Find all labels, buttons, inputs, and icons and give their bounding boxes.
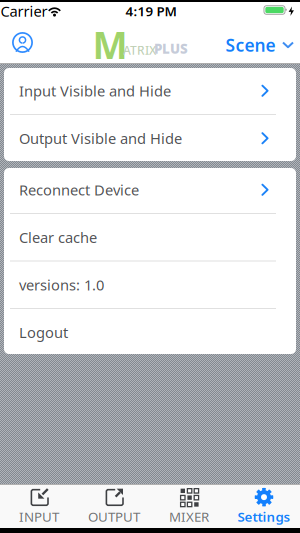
staticText: M — [92, 20, 127, 69]
button[interactable]: Settings — [226, 485, 300, 528]
staticText: Logout — [19, 322, 68, 342]
button[interactable]: Scene — [228, 29, 300, 57]
staticText: Settings — [237, 508, 290, 525]
button[interactable]: Input Visible and Hide — [4, 67, 296, 114]
staticText: MIXER — [169, 508, 209, 525]
button[interactable]: Reconnect Device — [4, 166, 296, 213]
button[interactable]: Output Visible and Hide — [4, 115, 296, 161]
staticText: OUTPUT — [88, 508, 140, 525]
staticText: INPUT — [19, 508, 59, 525]
staticText: Clear cache — [19, 227, 97, 247]
staticText: Input Visible and Hide — [19, 81, 171, 100]
button[interactable]: MIXER — [151, 485, 226, 528]
staticText: Output Visible and Hide — [19, 128, 182, 148]
button[interactable]: Clear cache — [4, 214, 296, 260]
staticText: PLUS — [154, 40, 188, 57]
button[interactable]: Logout — [4, 309, 296, 355]
staticText: ATRIX — [123, 42, 156, 58]
staticText: Scene — [225, 33, 275, 56]
staticText: Reconnect Device — [19, 180, 139, 199]
staticText: versions: 1.0 — [19, 275, 104, 294]
button[interactable]: Account — [12, 32, 33, 53]
button[interactable]: INPUT — [1, 485, 76, 528]
button[interactable]: OUTPUT — [76, 485, 151, 528]
staticText: 4:19 PM — [125, 2, 176, 20]
staticText: Carrier — [0, 1, 47, 21]
